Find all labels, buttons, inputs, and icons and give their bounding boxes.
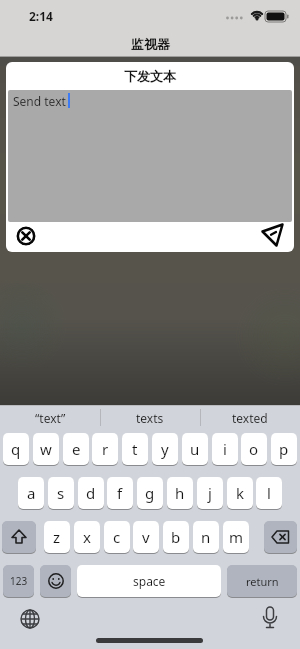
button[interactable]: j	[197, 477, 223, 509]
staticText: p	[279, 439, 289, 459]
button[interactable]	[258, 222, 286, 250]
staticText: v	[142, 527, 150, 547]
button[interactable]	[264, 521, 297, 553]
button[interactable]: 监视器	[131, 36, 170, 52]
button[interactable]: space	[77, 565, 221, 597]
staticText: w	[40, 439, 52, 459]
staticText: m	[229, 527, 244, 547]
button[interactable]: m	[223, 521, 249, 553]
button[interactable]: texts	[100, 406, 200, 430]
button[interactable]: o	[241, 433, 267, 465]
button[interactable]: k	[227, 477, 253, 509]
staticText: 下发文本	[124, 68, 176, 84]
staticText: s	[57, 483, 65, 503]
button[interactable]: Send text	[8, 90, 292, 222]
button[interactable]	[254, 602, 286, 634]
button[interactable]: texted	[200, 406, 300, 430]
button[interactable]: e	[63, 433, 89, 465]
button[interactable]: q	[3, 433, 29, 465]
staticText: Send text	[13, 93, 66, 109]
button[interactable]: u	[182, 433, 208, 465]
staticText: space	[133, 573, 166, 589]
button[interactable]	[40, 565, 71, 597]
staticText: h	[175, 483, 185, 503]
staticText: l	[267, 483, 271, 503]
button[interactable]: 123	[3, 565, 34, 597]
staticText: i	[223, 439, 227, 459]
button[interactable]: l	[256, 477, 282, 509]
staticText: f	[117, 483, 123, 503]
staticText: g	[145, 483, 155, 503]
staticText: y	[161, 439, 169, 459]
staticText: 2:14	[29, 8, 53, 24]
button[interactable]: i	[212, 433, 238, 465]
button[interactable]: n	[193, 521, 219, 553]
staticText: a	[27, 483, 36, 503]
staticText: 监视器	[131, 36, 170, 52]
button[interactable]: s	[48, 477, 74, 509]
staticText: n	[201, 527, 211, 547]
staticText: “text”	[35, 410, 66, 426]
button[interactable]: z	[44, 521, 70, 553]
button[interactable]: x	[74, 521, 100, 553]
staticText: x	[83, 527, 91, 547]
staticText: texted	[232, 410, 268, 426]
staticText: e	[72, 439, 81, 459]
button[interactable]: b	[163, 521, 189, 553]
staticText: t	[132, 439, 138, 459]
button[interactable]: t	[122, 433, 148, 465]
button[interactable]: w	[33, 433, 59, 465]
staticText: r	[102, 439, 109, 459]
staticText: q	[11, 439, 21, 459]
button[interactable]	[14, 603, 46, 635]
staticText: d	[86, 483, 96, 503]
button[interactable]: p	[271, 433, 297, 465]
staticText: c	[113, 527, 121, 547]
staticText: j	[208, 483, 212, 503]
button[interactable]: “text”	[0, 406, 100, 430]
button[interactable]: return	[227, 565, 297, 597]
button[interactable]: f	[107, 477, 133, 509]
staticText: k	[236, 483, 245, 503]
staticText: o	[249, 439, 259, 459]
button[interactable]: g	[137, 477, 163, 509]
staticText: b	[171, 527, 181, 547]
button[interactable]: a	[18, 477, 44, 509]
button[interactable]: y	[152, 433, 178, 465]
staticText: 123	[10, 574, 28, 588]
button[interactable]: r	[92, 433, 118, 465]
staticText: z	[53, 527, 61, 547]
staticText: return	[246, 574, 279, 589]
staticText: texts	[136, 410, 164, 426]
button[interactable]: h	[167, 477, 193, 509]
button[interactable]: d	[78, 477, 104, 509]
button[interactable]: c	[104, 521, 130, 553]
button[interactable]	[2, 521, 36, 553]
button[interactable]	[16, 226, 36, 246]
staticText: u	[190, 439, 200, 459]
button[interactable]: v	[133, 521, 159, 553]
